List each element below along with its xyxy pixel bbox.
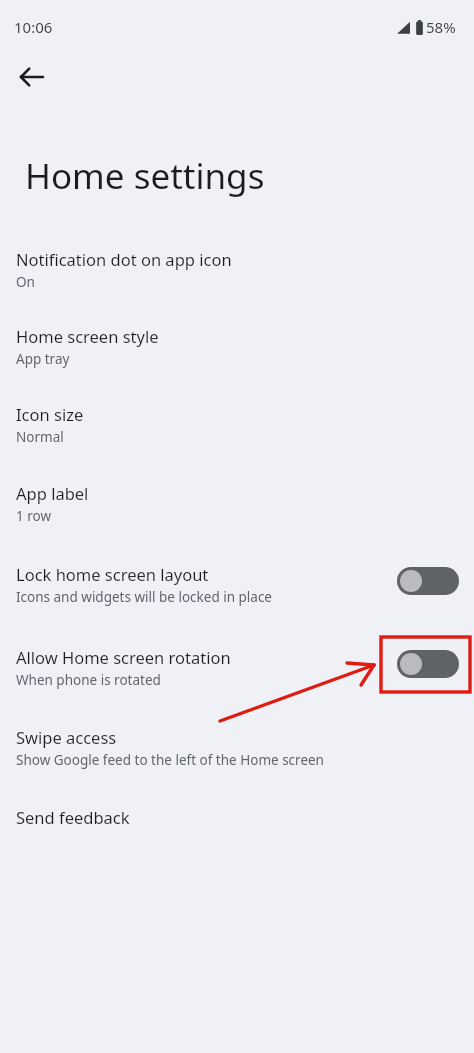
button[interactable]: App label <box>0 482 474 534</box>
button[interactable]: Notification dot on app icon <box>0 248 474 300</box>
staticText: Icons and widgets will be locked in plac… <box>16 588 272 606</box>
staticText: Send feedback <box>16 806 130 828</box>
staticText: Lock home screen layout <box>16 563 209 585</box>
button[interactable]: Lock home screen layout <box>0 563 474 615</box>
staticText: 10:06 <box>14 17 53 37</box>
staticText: Home screen style <box>16 325 159 347</box>
staticText: Home settings <box>25 152 265 200</box>
staticText: App tray <box>16 350 70 368</box>
staticText: App label <box>16 482 89 504</box>
staticText: Normal <box>16 428 64 446</box>
staticText: Show Google feed to the left of the Home… <box>16 751 324 769</box>
staticText: Allow Home screen rotation <box>16 646 231 668</box>
button[interactable]: Allow Home screen rotation <box>0 646 474 698</box>
button[interactable]: Toggle <box>397 650 459 678</box>
button[interactable]: Home screen style <box>0 325 474 377</box>
button[interactable]: Toggle <box>397 567 459 595</box>
staticText: Icon size <box>16 403 84 425</box>
button[interactable]: Swipe access <box>0 726 474 778</box>
staticText: 58% <box>426 17 456 37</box>
staticText: When phone is rotated <box>16 671 161 689</box>
button[interactable]: Send feedback <box>0 806 474 840</box>
button[interactable]: Back <box>12 58 50 96</box>
button[interactable]: Icon size <box>0 403 474 455</box>
staticText: Notification dot on app icon <box>16 248 232 270</box>
staticText: Swipe access <box>16 726 117 748</box>
staticText: 1 row <box>16 507 52 525</box>
staticText: On <box>16 273 35 291</box>
